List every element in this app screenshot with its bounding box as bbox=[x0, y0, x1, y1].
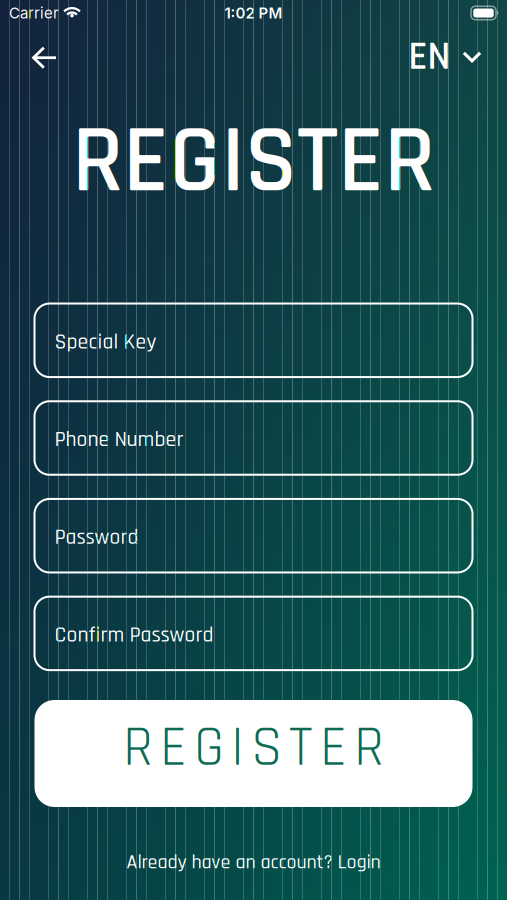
button[interactable]: Language EN bbox=[408, 31, 482, 82]
staticText: Confirm Password bbox=[54, 621, 213, 649]
button[interactable]: Back bbox=[24, 36, 65, 79]
staticText: E bbox=[320, 713, 347, 784]
staticText: Carrier bbox=[9, 4, 59, 22]
staticText: 1:02 PM bbox=[224, 4, 282, 22]
button[interactable]: Login bbox=[337, 850, 380, 875]
staticText: E bbox=[160, 713, 187, 784]
button[interactable]: Special Key bbox=[34, 304, 472, 377]
staticText: Special Key bbox=[54, 328, 156, 356]
staticText: EN bbox=[408, 31, 450, 82]
staticText: Login bbox=[337, 850, 380, 875]
button[interactable]: R bbox=[34, 700, 472, 807]
staticText: R bbox=[354, 713, 384, 784]
staticText: Password bbox=[54, 524, 138, 551]
staticText: I bbox=[231, 713, 244, 784]
button[interactable]: Password bbox=[34, 499, 472, 572]
staticText: T bbox=[289, 713, 313, 784]
staticText: Already have an account? bbox=[126, 850, 332, 875]
staticText: S bbox=[251, 713, 282, 784]
staticText: REGISTER bbox=[72, 102, 435, 223]
staticText: R bbox=[123, 713, 153, 784]
staticText: Phone Number bbox=[54, 426, 183, 453]
button[interactable]: Phone Number bbox=[34, 401, 472, 475]
button[interactable]: Confirm Password bbox=[34, 597, 472, 670]
staticText: G bbox=[194, 713, 224, 784]
